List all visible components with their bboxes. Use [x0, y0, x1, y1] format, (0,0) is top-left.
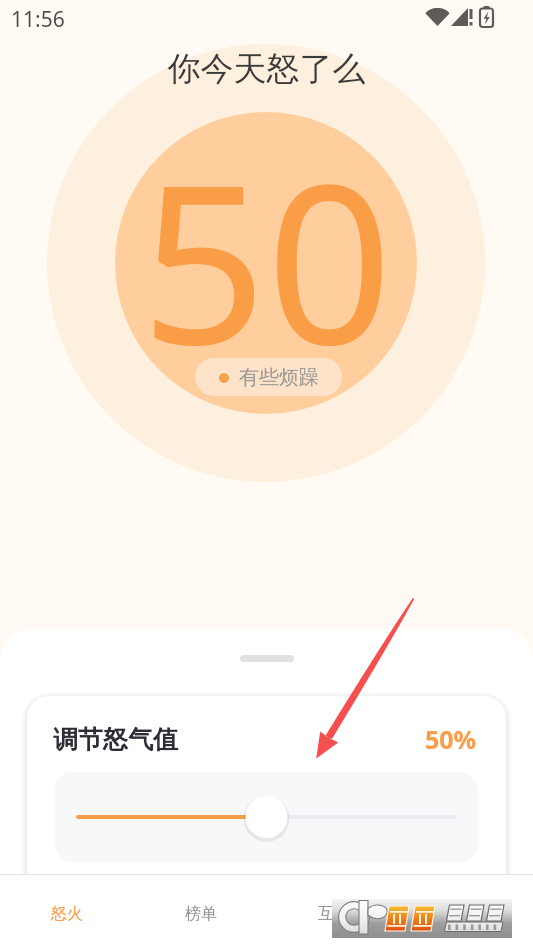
button[interactable]: 互动: [267, 875, 400, 948]
staticText: 怒火: [51, 904, 83, 924]
other: 拖动手柄: [240, 655, 294, 662]
staticText: 50%: [425, 722, 477, 756]
staticText: 榜单: [185, 904, 217, 924]
button[interactable]: 怒气值 50，有些烦躁: [115, 112, 417, 414]
button[interactable]: 怒气值滑块 50%: [55, 772, 478, 862]
staticText: 你今天怒了么: [0, 48, 533, 90]
staticText: 调节怒气值: [53, 724, 178, 755]
staticText: 11:56: [11, 5, 65, 34]
button[interactable]: 怒火: [0, 875, 134, 948]
staticText: 互动: [318, 904, 350, 924]
staticText: 有些烦躁: [239, 365, 319, 390]
button[interactable]: 榜单: [134, 875, 267, 948]
staticText: 我的: [451, 904, 483, 924]
staticText: 50: [0, 109, 533, 409]
button[interactable]: 我的: [400, 875, 533, 948]
button[interactable]: 有些烦躁: [195, 358, 342, 396]
